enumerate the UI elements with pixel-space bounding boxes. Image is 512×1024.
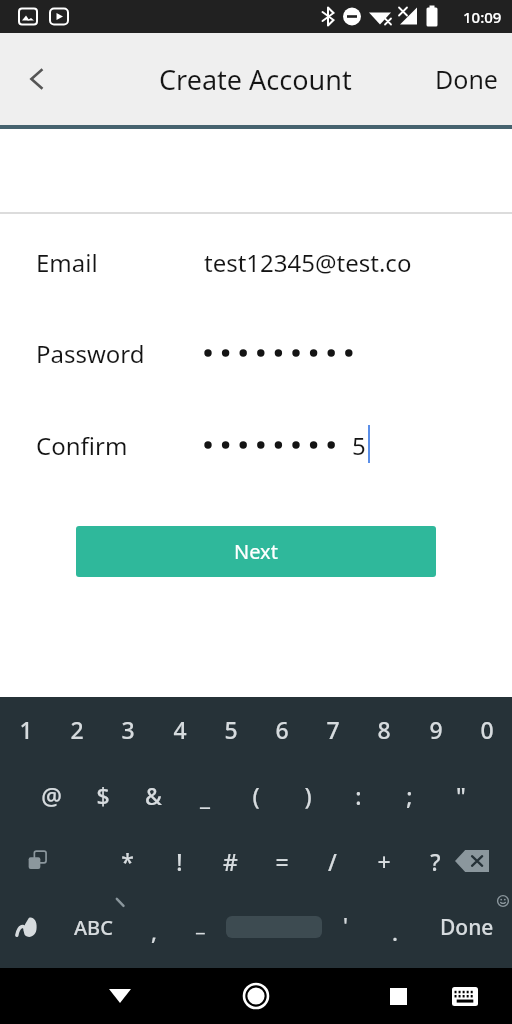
staticText: ) <box>304 780 312 811</box>
button[interactable]: Switch keyboard <box>442 968 488 1024</box>
staticText: Done <box>435 62 498 96</box>
staticText: ; <box>406 780 413 811</box>
button[interactable]: . <box>372 894 418 960</box>
button[interactable]: $ <box>77 762 128 828</box>
staticText: : <box>355 780 362 811</box>
button[interactable]: Recent apps <box>368 968 428 1024</box>
button[interactable]: Back <box>12 54 62 104</box>
button[interactable]: * <box>102 828 153 894</box>
button[interactable]: # <box>205 828 256 894</box>
staticText: @ <box>41 780 62 811</box>
button[interactable]: 8 <box>358 697 409 762</box>
button[interactable]: + <box>358 828 409 894</box>
button[interactable]: More symbols <box>12 828 64 894</box>
button[interactable]: Back <box>90 968 150 1024</box>
staticText: = <box>275 846 289 877</box>
button[interactable]: _ <box>179 762 230 828</box>
button[interactable]: 3 <box>102 697 153 762</box>
button[interactable]: Gesture typing <box>4 894 56 960</box>
staticText: & <box>145 780 162 811</box>
button[interactable]: _ <box>174 894 226 960</box>
staticText: Password <box>36 337 145 370</box>
staticText: Done <box>440 913 494 942</box>
staticText: ABC <box>74 914 113 941</box>
button[interactable]: : <box>333 762 384 828</box>
staticText: 6 <box>275 714 289 745</box>
button[interactable]: = <box>256 828 307 894</box>
button[interactable]: ( <box>230 762 281 828</box>
staticText: 8 <box>377 714 391 745</box>
button[interactable]: 0 <box>461 697 512 762</box>
staticText: Next <box>234 538 278 565</box>
button[interactable]: Done <box>421 33 512 125</box>
button[interactable]: 4 <box>154 697 205 762</box>
staticText: 2 <box>70 714 84 745</box>
button[interactable]: 2 <box>51 697 102 762</box>
staticText: ' <box>343 912 348 941</box>
staticText: . <box>392 917 398 947</box>
staticText: # <box>223 846 238 877</box>
button[interactable]: Home <box>226 968 286 1024</box>
button[interactable]: / <box>307 828 358 894</box>
button[interactable]: Email <box>0 227 512 297</box>
staticText: 5 <box>352 429 366 462</box>
staticText: 1 <box>19 714 33 745</box>
staticText: 3 <box>121 714 135 745</box>
staticText: Create Account <box>159 61 352 98</box>
button[interactable]: Done <box>432 894 502 960</box>
staticText: 10:09 <box>463 7 502 27</box>
staticText: Confirm <box>36 429 128 462</box>
staticText: ! <box>176 846 183 877</box>
button[interactable]: 7 <box>307 697 358 762</box>
button[interactable]: ; <box>384 762 435 828</box>
staticText: ( <box>252 780 260 811</box>
button[interactable]: @ <box>26 762 77 828</box>
staticText: test12345@test.co <box>204 246 412 279</box>
button[interactable]: , <box>128 894 180 960</box>
button[interactable]: ) <box>282 762 333 828</box>
staticText: " <box>456 780 466 811</box>
button[interactable]: Confirm <box>0 410 512 480</box>
staticText: Email <box>36 246 98 279</box>
staticText: $ <box>96 780 110 811</box>
button[interactable]: 5 <box>205 697 256 762</box>
staticText: 5 <box>224 714 238 745</box>
button[interactable]: ' <box>322 894 368 960</box>
staticText: , <box>151 916 158 946</box>
staticText: + <box>377 846 391 877</box>
button[interactable]: 1 <box>0 697 51 762</box>
staticText: * <box>121 846 134 877</box>
button[interactable]: Next <box>76 526 436 577</box>
button[interactable]: Backspace <box>446 835 498 887</box>
staticText: _ <box>200 780 210 811</box>
staticText: 9 <box>429 714 443 745</box>
staticText: 7 <box>326 714 340 745</box>
staticText: ? <box>430 846 441 877</box>
staticText: 4 <box>173 714 187 745</box>
button[interactable]: & <box>128 762 179 828</box>
button[interactable]: ? <box>410 828 461 894</box>
staticText: _ <box>196 910 205 937</box>
button[interactable]: Password <box>0 318 512 388</box>
staticText: 0 <box>480 714 494 745</box>
staticText: / <box>328 846 337 877</box>
button[interactable]: 6 <box>256 697 307 762</box>
button[interactable]: " <box>435 762 486 828</box>
button[interactable]: ! <box>154 828 205 894</box>
button[interactable]: ABC <box>58 894 128 960</box>
button[interactable]: 9 <box>410 697 461 762</box>
